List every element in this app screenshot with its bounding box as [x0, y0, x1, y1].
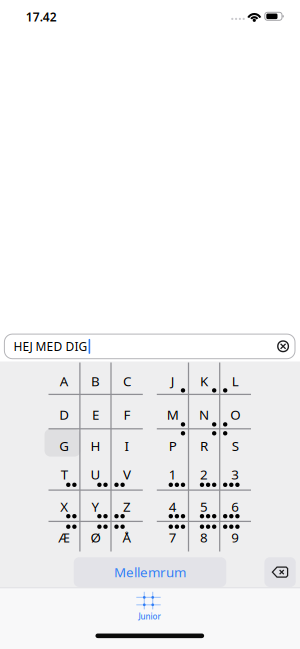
button[interactable]: G — [48, 429, 80, 459]
staticText: 8 — [200, 528, 208, 546]
button[interactable]: Clear text — [275, 338, 291, 354]
staticText: Junior — [138, 611, 160, 622]
staticText: HEJ MED DIG — [13, 338, 87, 354]
staticText: 7 — [169, 528, 177, 546]
staticText: Mellemrum — [114, 563, 186, 581]
button[interactable]: S — [220, 429, 251, 459]
staticText: S — [232, 437, 239, 455]
staticText: J — [171, 372, 175, 390]
staticText: 6 — [231, 498, 239, 515]
button[interactable]: M — [157, 394, 188, 429]
button[interactable]: Mellemrum — [74, 557, 226, 587]
staticText: X — [60, 498, 68, 515]
button[interactable]: 4 — [157, 490, 188, 521]
button[interactable]: K — [188, 362, 220, 394]
button[interactable]: 1 — [157, 459, 188, 490]
button[interactable]: T — [48, 459, 80, 490]
button[interactable]: Junior — [135, 588, 163, 620]
button[interactable]: 7 — [157, 521, 188, 551]
button[interactable]: Æ — [48, 521, 80, 551]
button[interactable]: L — [220, 362, 251, 394]
staticText: O — [230, 406, 240, 423]
button[interactable]: 8 — [188, 521, 220, 551]
staticText: L — [232, 372, 239, 390]
button[interactable]: A — [48, 362, 80, 394]
staticText: 17.42 — [26, 9, 57, 25]
button[interactable]: C — [111, 362, 143, 394]
button[interactable]: F — [111, 394, 143, 429]
button[interactable]: H — [80, 429, 111, 459]
staticText: V — [123, 465, 131, 483]
staticText: M — [167, 406, 179, 423]
staticText: T — [61, 465, 68, 483]
button[interactable]: HEJ MED DIG — [4, 334, 295, 359]
button[interactable]: N — [188, 394, 220, 429]
button[interactable]: 6 — [220, 490, 251, 521]
staticText: P — [169, 437, 177, 455]
button[interactable]: P — [157, 429, 188, 459]
staticText: A — [60, 372, 69, 390]
button[interactable]: O — [220, 394, 251, 429]
staticText: N — [199, 406, 209, 423]
staticText: K — [200, 372, 208, 390]
staticText: 5 — [200, 498, 208, 515]
staticText: D — [59, 406, 69, 423]
button[interactable]: Delete — [264, 557, 296, 587]
staticText: Ø — [90, 528, 100, 546]
staticText: 9 — [231, 528, 239, 546]
button[interactable]: B — [80, 362, 111, 394]
button[interactable]: 5 — [188, 490, 220, 521]
button[interactable]: J — [157, 362, 188, 394]
button[interactable]: 2 — [188, 459, 220, 490]
button[interactable]: E — [80, 394, 111, 429]
staticText: B — [91, 372, 100, 390]
button[interactable]: U — [80, 459, 111, 490]
button[interactable]: Z — [111, 490, 143, 521]
button[interactable]: V — [111, 459, 143, 490]
staticText: 2 — [200, 465, 208, 483]
staticText: 3 — [231, 465, 239, 483]
button[interactable]: Y — [80, 490, 111, 521]
button[interactable]: Å — [111, 521, 143, 551]
staticText: Æ — [58, 528, 70, 546]
staticText: G — [59, 437, 69, 455]
button[interactable]: X — [48, 490, 80, 521]
button[interactable]: 9 — [220, 521, 251, 551]
staticText: C — [123, 372, 131, 390]
staticText: Z — [123, 498, 131, 515]
staticText: H — [90, 437, 100, 455]
staticText: U — [90, 465, 100, 483]
button[interactable]: 3 — [220, 459, 251, 490]
button[interactable]: I — [111, 429, 143, 459]
button[interactable]: Ø — [80, 521, 111, 551]
staticText: R — [200, 437, 208, 455]
staticText: F — [123, 406, 130, 423]
button[interactable]: D — [48, 394, 80, 429]
staticText: I — [124, 437, 129, 455]
staticText: 4 — [169, 498, 177, 515]
staticText: Y — [91, 498, 99, 515]
staticText: 1 — [169, 465, 177, 483]
staticText: E — [92, 406, 99, 423]
button[interactable]: R — [188, 429, 220, 459]
staticText: Å — [122, 528, 131, 546]
